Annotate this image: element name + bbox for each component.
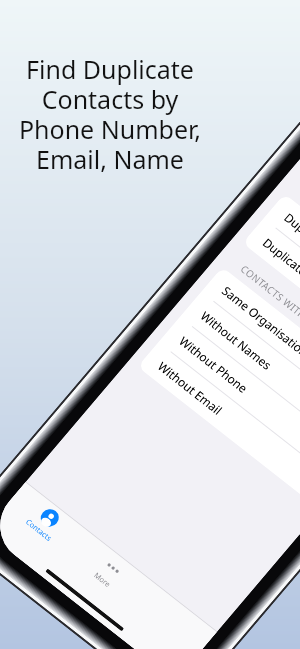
staticText: Without Email (155, 358, 226, 418)
staticText: CONTACTS WITHOUT DETAILS (238, 262, 300, 361)
button[interactable]: Same Organisation (201, 267, 300, 428)
button[interactable]: Contacts (0, 482, 90, 563)
staticText: Contacts (24, 517, 54, 543)
button[interactable]: Without Names (180, 292, 300, 453)
button[interactable]: Duplicate Contacts (264, 194, 300, 355)
staticText: Same Organisation (219, 282, 300, 360)
button[interactable]: Without Phone (159, 317, 300, 479)
staticText: Find Duplicate Contacts by Phone Number,… (0, 52, 220, 176)
button[interactable]: More (64, 533, 153, 613)
staticText: Without Names (198, 308, 275, 373)
button[interactable]: Duplicate Contacts (242, 219, 300, 380)
button[interactable]: Without Email (137, 342, 300, 504)
staticText: Without Phone (176, 333, 252, 396)
staticText: More (92, 570, 113, 589)
staticText: Duplicate Contacts (281, 209, 300, 285)
staticText: Duplicate Contacts (260, 234, 300, 310)
